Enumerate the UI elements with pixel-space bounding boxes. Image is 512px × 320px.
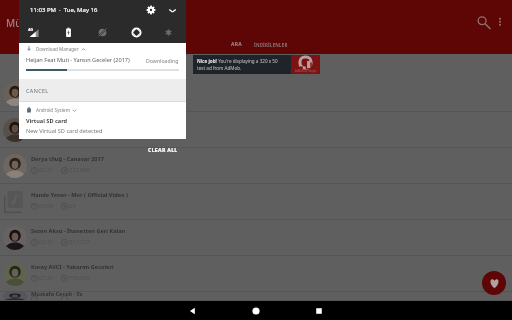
button[interactable]: ARA (224, 38, 250, 51)
button[interactable]: Back (184, 302, 202, 320)
staticText: Downloading (146, 57, 179, 64)
staticText: 1,204,332 (69, 94, 95, 102)
staticText: 842,113 (69, 130, 90, 138)
staticText: test ad from AdMob. (197, 65, 242, 71)
staticText: Sezen Aksu - İhanetten Geri Kalan (31, 227, 126, 235)
button[interactable]: Hande Yener - Mor ( Official Video ) (0, 184, 512, 220)
staticText: Download Manager (36, 46, 79, 52)
button[interactable]: Aleyna Tilki - Cevapsız Çınlama (0, 76, 512, 112)
button[interactable]: Mustafa Ceceli - Es (0, 292, 512, 301)
button[interactable]: Nice job! (193, 55, 320, 74)
staticText: ARA (231, 41, 243, 48)
staticText: 4G (28, 27, 34, 32)
staticText: 817,037 (69, 238, 90, 246)
staticText: 03:21 (39, 166, 54, 174)
button[interactable]: Auto rotate (119, 22, 153, 43)
staticText: 11:03 PM · Tue, May 16 (30, 6, 98, 14)
button[interactable]: More options (492, 13, 508, 29)
button[interactable]: Mobile data (17, 22, 51, 43)
staticText: Heijan Feat Muti - Yansın Geceler (2017) (26, 56, 146, 64)
staticText: 07:27 (39, 274, 54, 282)
staticText: Aleyna Tilki - Cevapsız Çınlama (31, 83, 117, 91)
staticText: Ebru Gündeş - Demir Attım (31, 119, 106, 127)
staticText: Müzik İndir (6, 16, 61, 30)
button[interactable]: CANCEL (19, 79, 186, 101)
staticText: 03:45 (39, 94, 54, 102)
button[interactable]: Battery (51, 22, 85, 43)
staticText: Koray AVCI - Yakarım Geceleri (31, 263, 114, 271)
button[interactable]: Favorites (482, 271, 506, 295)
staticText: Derya Uluğ - Canavar 2017 (31, 155, 104, 163)
button[interactable]: Android System (19, 102, 186, 139)
staticText: İNDİRİLENLER (254, 42, 288, 48)
staticText: Mustafa Ceceli - Es (31, 290, 83, 298)
button[interactable]: Flashlight (153, 22, 184, 43)
button[interactable]: Derya Uluğ - Canavar 2017 (0, 148, 512, 184)
staticText: 04:10 (39, 130, 54, 138)
button[interactable]: Home (247, 302, 265, 320)
button[interactable]: Recents (310, 302, 328, 320)
button[interactable]: Do not disturb (85, 22, 119, 43)
staticText: CANCEL (26, 87, 49, 94)
button[interactable]: Search (474, 13, 492, 31)
button[interactable]: Settings (146, 5, 156, 15)
staticText: 03:37 (39, 238, 54, 246)
staticText: Nice job! (197, 58, 217, 64)
button[interactable]: Expand (167, 5, 178, 16)
button[interactable]: Ebru Gündeş - Demir Attım (0, 112, 512, 148)
button[interactable]: Koray AVCI - Yakarım Geceleri (0, 256, 512, 292)
staticText: AdMob by Google (295, 69, 317, 73)
staticText: New Virtual SD card detected (26, 127, 103, 135)
staticText: CLEAR ALL (148, 146, 178, 153)
staticText: 237,689 (69, 166, 90, 174)
button[interactable]: CLEAR ALL (142, 144, 186, 155)
button[interactable]: Sezen Aksu - İhanetten Geri Kalan (0, 220, 512, 256)
staticText: 755,539 (69, 274, 90, 282)
staticText: Virtual SD card (26, 117, 68, 125)
staticText: 69 (69, 202, 76, 210)
staticText: You're displaying a 320 x 50 (217, 58, 278, 64)
button[interactable]: İNDİRİLENLER (250, 39, 292, 51)
staticText: 03:08 (39, 202, 54, 210)
staticText: Hande Yener - Mor ( Official Video ) (31, 191, 128, 199)
staticText: Android System (36, 107, 70, 113)
button[interactable]: Download Manager (19, 43, 186, 79)
